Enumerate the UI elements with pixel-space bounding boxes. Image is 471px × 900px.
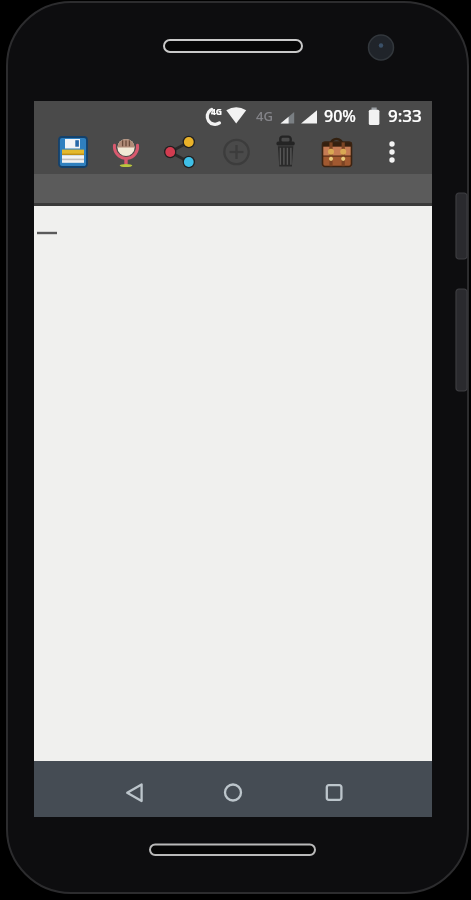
button[interactable] (209, 768, 257, 816)
staticText: 4G (256, 107, 273, 125)
button[interactable] (313, 128, 361, 175)
button[interactable] (368, 128, 416, 175)
button[interactable] (261, 128, 309, 175)
button[interactable] (102, 128, 150, 175)
staticText: 9:33 (388, 104, 422, 127)
button[interactable] (111, 768, 159, 816)
button[interactable] (310, 768, 358, 816)
button[interactable] (212, 128, 260, 175)
button[interactable] (49, 128, 97, 175)
button[interactable] (155, 128, 203, 175)
staticText: 90% (324, 105, 356, 127)
staticText: 4G (211, 106, 223, 118)
